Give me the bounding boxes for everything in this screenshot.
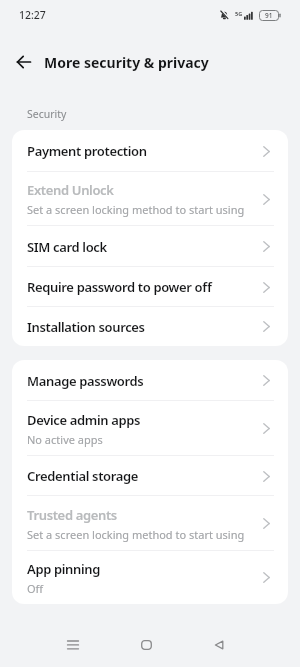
staticText: 91 — [265, 11, 273, 20]
staticText: Installation sources — [27, 318, 145, 336]
button[interactable]: App pinning — [12, 551, 288, 604]
staticText: Security — [27, 107, 67, 121]
staticText: Off — [27, 581, 44, 596]
button[interactable]: Device admin apps — [12, 401, 288, 456]
button[interactable]: Credential storage — [12, 456, 288, 496]
staticText: More security & privacy — [44, 53, 209, 72]
button[interactable] — [214, 640, 224, 650]
button[interactable] — [67, 640, 79, 650]
button[interactable]: SIM card lock — [12, 226, 288, 267]
staticText: Trusted agents — [27, 506, 117, 524]
staticText: 12:27 — [19, 8, 46, 22]
staticText: Payment protection — [27, 142, 147, 160]
staticText: App pinning — [27, 560, 101, 578]
button[interactable]: Installation sources — [12, 307, 288, 346]
staticText: Set a screen locking method to start usi… — [27, 527, 245, 542]
button[interactable]: Extend Unlock — [12, 172, 288, 226]
button[interactable]: Payment protection — [12, 130, 288, 172]
staticText: SIM card lock — [27, 238, 107, 256]
staticText: Set a screen locking method to start usi… — [27, 202, 245, 217]
staticText: Require password to power off — [27, 278, 212, 296]
staticText: Device admin apps — [27, 411, 141, 429]
button[interactable]: Require password to power off — [12, 267, 288, 307]
staticText: Extend Unlock — [27, 181, 114, 199]
button[interactable] — [9, 47, 39, 77]
button[interactable]: Trusted agents — [12, 496, 288, 551]
staticText: Credential storage — [27, 467, 139, 485]
staticText: Manage passwords — [27, 372, 144, 390]
staticText: 5G — [235, 10, 243, 17]
staticText: No active apps — [27, 432, 103, 447]
button[interactable] — [141, 640, 152, 650]
button[interactable]: Manage passwords — [12, 360, 288, 401]
